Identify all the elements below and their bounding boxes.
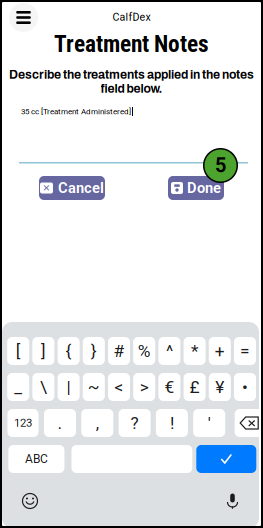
button[interactable]: £ (184, 373, 206, 401)
staticText: | (67, 377, 71, 397)
staticText: ¥ (215, 377, 224, 397)
staticText: € (164, 377, 174, 397)
staticText: _ (14, 377, 22, 397)
staticText: Cancel (58, 179, 104, 197)
staticText: , (96, 413, 99, 433)
staticText: ' (208, 413, 211, 433)
button[interactable]: • (234, 373, 256, 401)
staticText: < (114, 377, 123, 397)
button[interactable]: [ (7, 337, 29, 365)
staticText: ~ (88, 377, 100, 397)
staticText: 35 cc [Treatment Administered] (21, 107, 131, 116)
button[interactable]: } (83, 337, 105, 365)
staticText: ? (131, 413, 139, 433)
button[interactable]: € (158, 373, 180, 401)
staticText: ! (170, 413, 174, 433)
button[interactable]: { (58, 337, 80, 365)
button[interactable]: % (133, 337, 155, 365)
staticText: # (113, 341, 124, 361)
button[interactable]: ] (32, 337, 54, 365)
staticText: [ (16, 341, 21, 361)
button[interactable]: > (133, 373, 155, 401)
button[interactable]: . (44, 409, 76, 437)
button[interactable]: Delete (235, 409, 263, 437)
staticText: * (191, 341, 198, 361)
staticText: % (138, 341, 151, 361)
staticText: ^ (166, 341, 173, 361)
staticText: > (140, 377, 149, 397)
staticText: • (242, 377, 248, 397)
button[interactable]: Done (168, 176, 224, 200)
button[interactable]: ✕ (39, 176, 105, 200)
button[interactable]: # (108, 337, 130, 365)
button[interactable]: 123 (7, 409, 38, 437)
staticText: Treatment Notes (54, 30, 209, 58)
button[interactable]: | (58, 373, 80, 401)
button[interactable]: ? (119, 409, 151, 437)
button[interactable]: ¥ (209, 373, 231, 401)
staticText: = (240, 341, 250, 361)
staticText: . (57, 413, 62, 433)
staticText: ABC (25, 452, 48, 466)
button[interactable]: ! (156, 409, 188, 437)
staticText: } (91, 341, 97, 361)
staticText: CalfDex (112, 11, 150, 23)
button[interactable]: ~ (83, 373, 105, 401)
staticText: ✕ (42, 183, 50, 193)
button[interactable]: ^ (158, 337, 180, 365)
button[interactable]: , (81, 409, 113, 437)
staticText: £ (190, 377, 200, 397)
button[interactable]: Return (196, 445, 256, 473)
staticText: 5 (215, 154, 226, 177)
button[interactable]: < (108, 373, 130, 401)
staticText: ] (41, 341, 46, 361)
staticText: Describe the treatments applied in the n… (9, 68, 254, 81)
button[interactable]: ABC (8, 445, 64, 473)
button[interactable]: * (184, 337, 206, 365)
staticText: + (215, 341, 225, 361)
button[interactable]: = (234, 337, 256, 365)
button[interactable]: Dictate (226, 492, 239, 509)
button[interactable]: Menu (9, 3, 38, 32)
staticText: { (66, 341, 72, 361)
button[interactable]: ' (193, 409, 225, 437)
staticText: \ (40, 377, 47, 397)
button[interactable]: \ (32, 373, 54, 401)
button[interactable]: _ (7, 373, 29, 401)
button[interactable]: + (209, 337, 231, 365)
staticText: field below. (100, 82, 162, 95)
staticText: Done (187, 179, 221, 197)
staticText: 123 (14, 416, 32, 430)
button[interactable]: Emoji (22, 493, 38, 509)
